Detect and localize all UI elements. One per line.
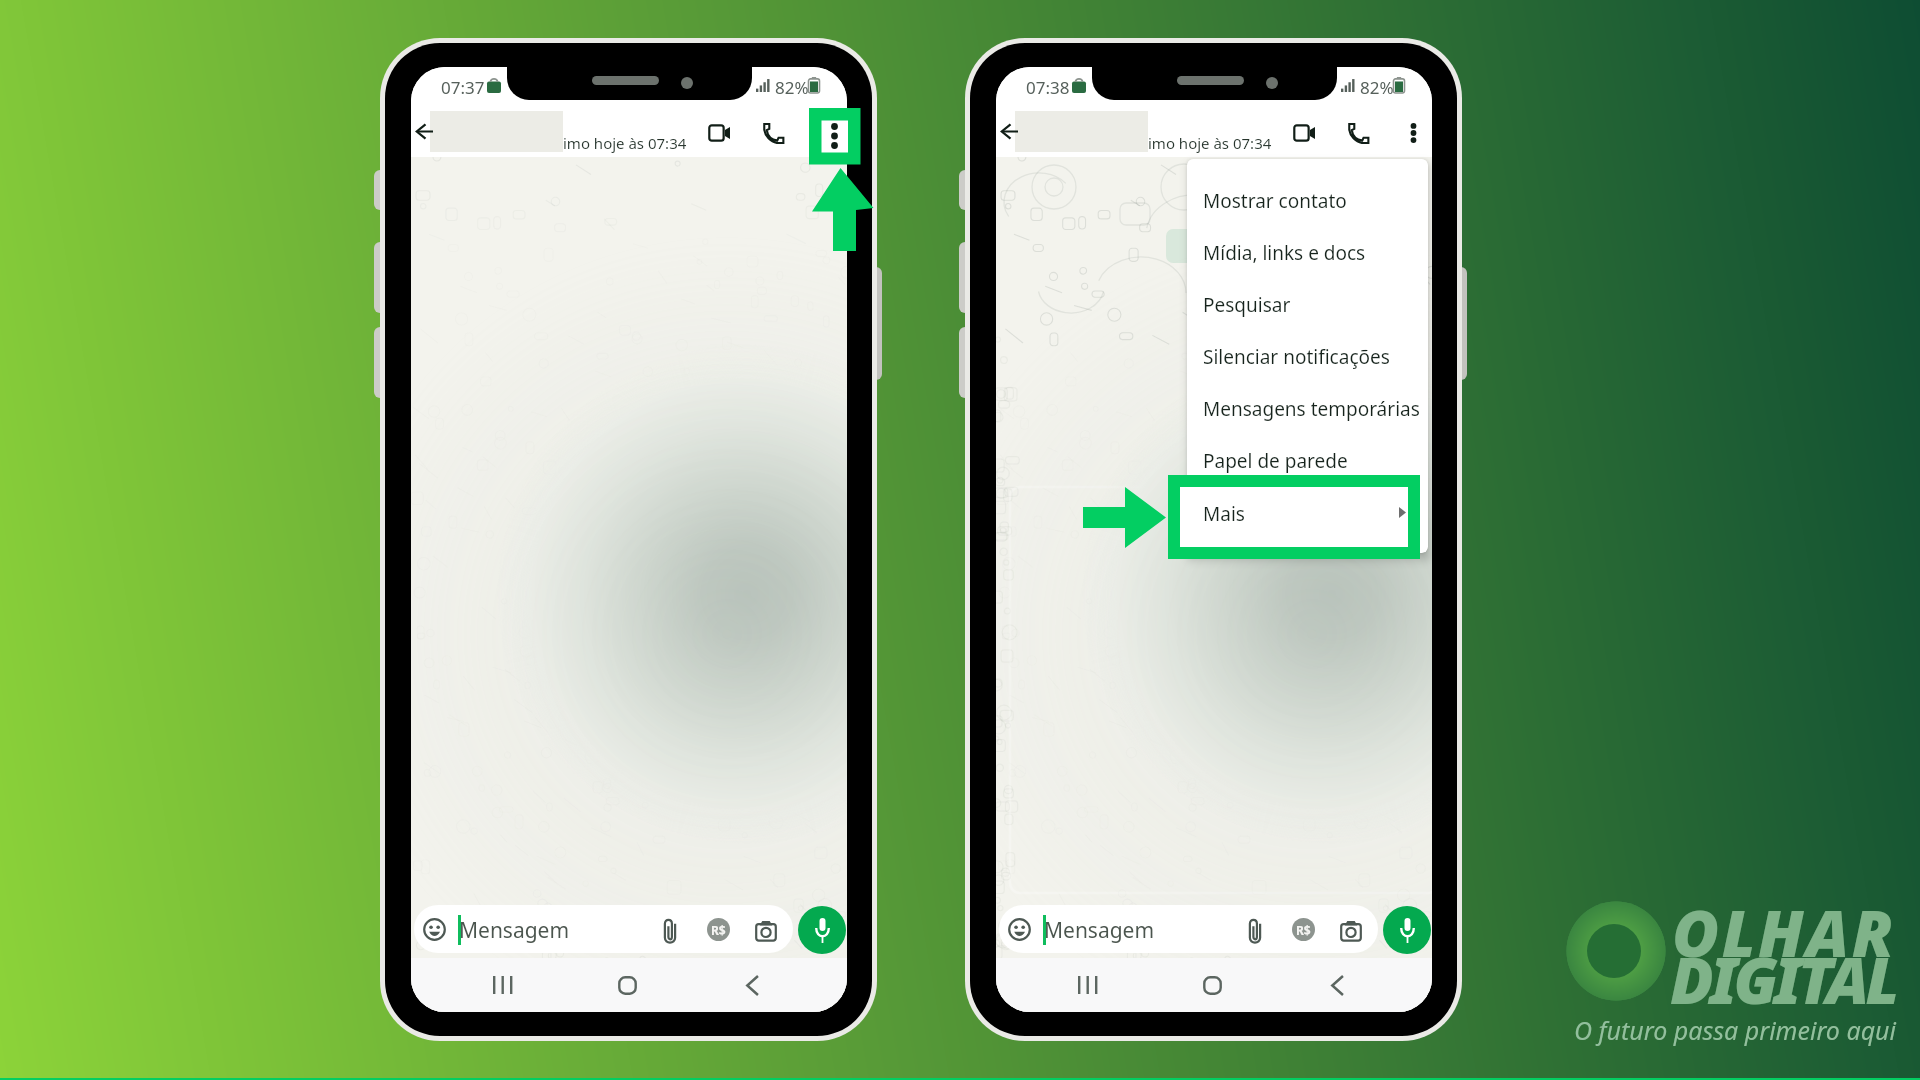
button[interactable]: Mostrar contato: [1187, 175, 1428, 227]
staticText: Mais: [1203, 501, 1245, 527]
staticText: R$: [711, 922, 726, 938]
button[interactable]: Mídia, links e docs: [1187, 227, 1428, 279]
staticText: Mídia, links e docs: [1203, 240, 1366, 266]
button[interactable]: Recents: [1064, 961, 1112, 1009]
button[interactable]: Video call: [1284, 114, 1324, 152]
staticText: Mensagem: [1044, 916, 1155, 945]
button[interactable]: Record voice message: [798, 906, 846, 954]
button[interactable]: Home: [1188, 961, 1236, 1009]
button[interactable]: Mensagens temporárias: [1187, 383, 1428, 435]
staticText: 82%: [1360, 76, 1394, 99]
button[interactable]: Mensagem: [414, 905, 793, 953]
button[interactable]: Video call: [699, 114, 739, 152]
staticText: 07:38: [1026, 76, 1070, 99]
button[interactable]: Mensagem: [999, 905, 1378, 953]
button[interactable]: More options: [809, 114, 847, 152]
button[interactable]: Voice call: [753, 113, 793, 153]
button[interactable]: Back: [996, 112, 1028, 150]
button[interactable]: Back: [1313, 961, 1361, 1009]
button[interactable]: Mais: [1187, 487, 1428, 539]
staticText: 07:37: [441, 76, 485, 99]
staticText: DIGITAL: [1670, 936, 1896, 1023]
button[interactable]: Recents: [479, 961, 527, 1009]
staticText: 82%: [775, 76, 809, 99]
staticText: Mostrar contato: [1203, 188, 1347, 214]
staticText: Mensagem: [459, 916, 570, 945]
staticText: imo hoje às 07:34: [1148, 133, 1272, 153]
staticText: Silenciar notificações: [1203, 344, 1390, 370]
staticText: Pesquisar: [1203, 292, 1291, 318]
button[interactable]: Record voice message: [1383, 906, 1431, 954]
staticText: Papel de parede: [1203, 448, 1348, 474]
button[interactable]: Silenciar notificações: [1187, 331, 1428, 383]
button[interactable]: More options: [1394, 114, 1432, 152]
button[interactable]: Back: [411, 112, 443, 150]
staticText: OLHAR: [1672, 889, 1896, 976]
staticText: O futuro passa primeiro aqui: [1574, 1013, 1897, 1047]
button[interactable]: Home: [603, 961, 651, 1009]
staticText: Mensagens temporárias: [1203, 396, 1420, 422]
staticText: imo hoje às 07:34: [563, 133, 687, 153]
button[interactable]: Voice call: [1338, 113, 1378, 153]
button[interactable]: Back: [728, 961, 776, 1009]
button[interactable]: Papel de parede: [1187, 435, 1428, 487]
staticText: Mais: [1203, 500, 1245, 526]
button[interactable]: Pesquisar: [1187, 279, 1428, 331]
staticText: R$: [1296, 922, 1311, 938]
